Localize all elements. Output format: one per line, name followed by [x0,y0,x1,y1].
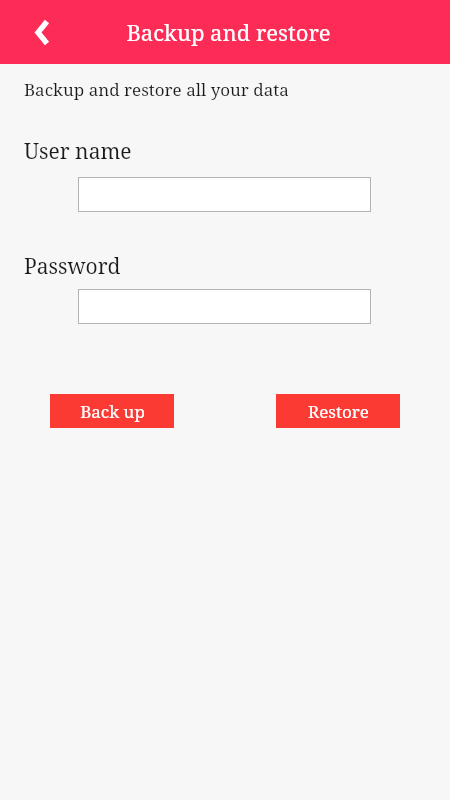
staticText: User name [24,137,132,166]
staticText: Backup and restore all your data [24,78,289,101]
staticText: Backup and restore [126,17,331,47]
staticText: Back up [80,400,145,423]
staticText: Password [24,252,121,281]
button[interactable] [78,289,371,324]
button[interactable]: Back [22,12,62,52]
button[interactable] [78,177,371,212]
button[interactable]: Back up [50,394,174,428]
button[interactable]: Restore [276,394,400,428]
staticText: Restore [308,400,369,423]
